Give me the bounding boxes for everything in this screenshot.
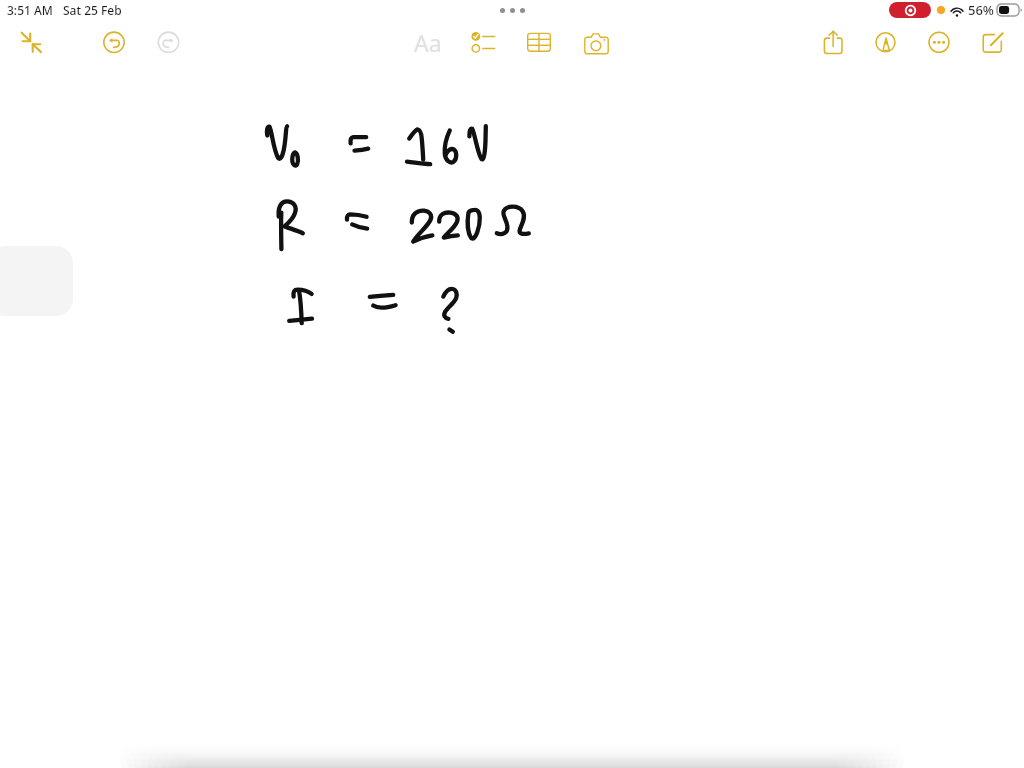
staticText: Aa [414, 27, 442, 58]
button[interactable]: Camera [576, 21, 618, 63]
staticText: 56% [968, 1, 994, 19]
button[interactable]: New note [972, 21, 1014, 63]
button[interactable]: Undo [93, 21, 135, 63]
button[interactable]: Text format [407, 21, 449, 63]
button[interactable]: More [918, 21, 960, 63]
button[interactable]: Redo [148, 21, 190, 63]
button[interactable]: Share [813, 21, 855, 63]
button[interactable]: Collapse [11, 21, 53, 63]
button[interactable]: Checklist [462, 21, 504, 63]
button[interactable]: Markup [865, 21, 907, 63]
button[interactable]: Table [518, 21, 560, 63]
button[interactable]: Screen recording [889, 2, 931, 18]
staticText: Sat 25 Feb [63, 2, 122, 18]
staticText: 3:51 AM [7, 2, 53, 18]
